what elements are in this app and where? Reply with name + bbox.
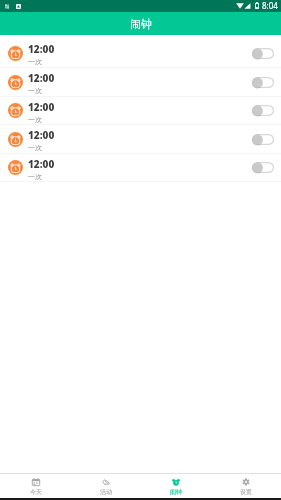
button[interactable]: 今天 xyxy=(0,474,71,498)
staticText: 8:04 xyxy=(262,0,278,11)
staticText: 闹钟 xyxy=(170,488,182,496)
staticText: 一次 xyxy=(28,143,42,152)
staticText: 12:00 xyxy=(28,128,55,142)
button[interactable]: Toggle alarm xyxy=(252,105,274,116)
button[interactable]: 12:00 xyxy=(0,125,281,154)
button[interactable]: Toggle alarm xyxy=(252,134,274,145)
button[interactable]: Toggle alarm xyxy=(252,77,274,88)
button[interactable]: Toggle alarm xyxy=(252,48,274,59)
staticText: 一次 xyxy=(28,115,42,124)
button[interactable]: Toggle alarm xyxy=(252,162,274,173)
button[interactable]: 设置 xyxy=(211,474,281,498)
button[interactable]: 活动 xyxy=(71,474,141,498)
button[interactable]: 12:00 xyxy=(0,68,281,97)
staticText: 12:00 xyxy=(28,71,55,85)
button[interactable]: 12:00 xyxy=(0,154,281,182)
staticText: 12:00 xyxy=(28,100,55,114)
staticText: 设置 xyxy=(240,488,252,496)
staticText: 闹钟 xyxy=(130,17,152,31)
staticText: 今天 xyxy=(30,488,42,496)
staticText: 一次 xyxy=(28,57,42,66)
button[interactable]: 12:00 xyxy=(0,97,281,125)
button[interactable]: 闹钟 xyxy=(141,474,211,498)
button[interactable]: 12:00 xyxy=(0,39,281,68)
staticText: 一次 xyxy=(28,172,42,181)
staticText: 一次 xyxy=(28,86,42,95)
staticText: 活动 xyxy=(100,488,112,496)
staticText: 12:00 xyxy=(28,157,55,171)
staticText: 12:00 xyxy=(28,42,55,56)
